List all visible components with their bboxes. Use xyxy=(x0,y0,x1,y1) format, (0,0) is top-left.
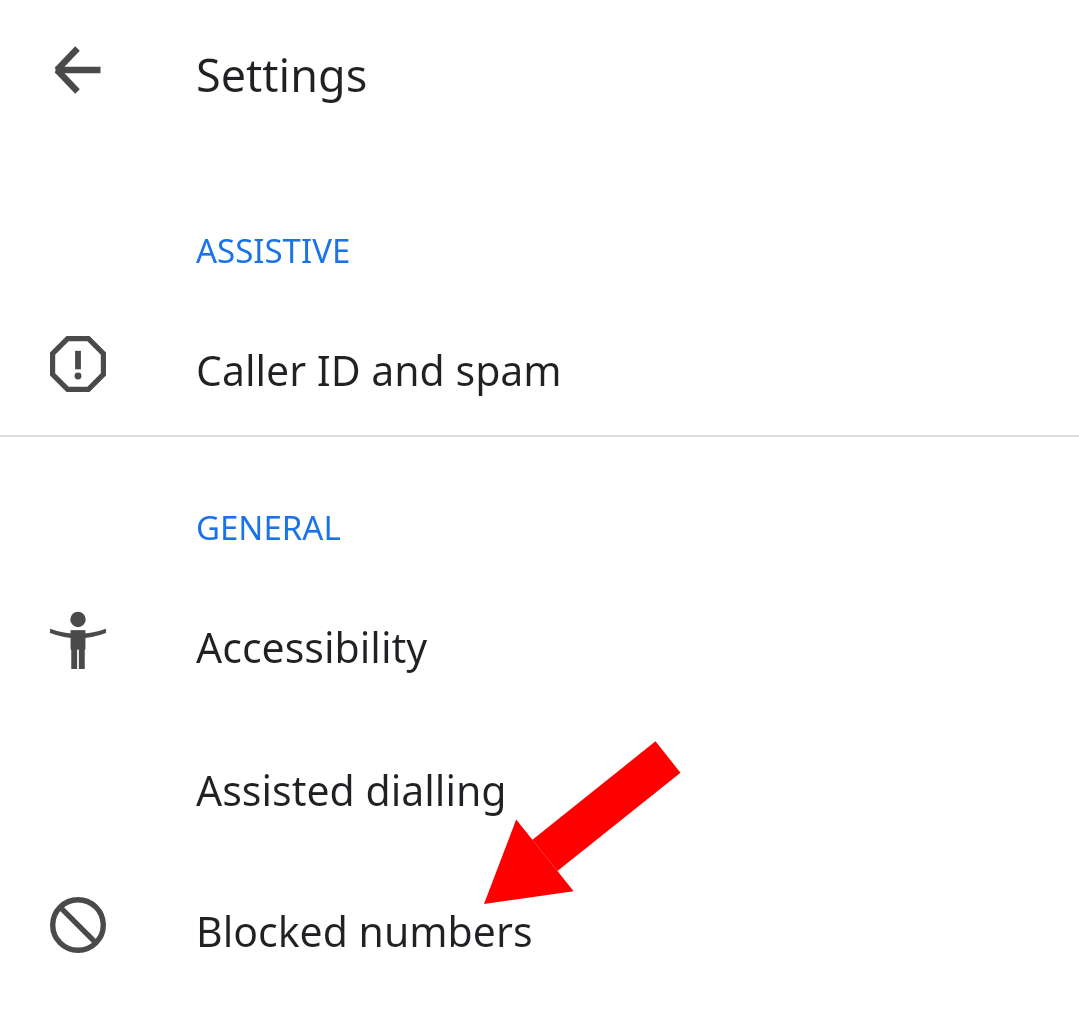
staticText: Assisted dialling xyxy=(196,762,507,818)
staticText: ASSISTIVE xyxy=(196,228,351,273)
staticText: Blocked numbers xyxy=(196,903,533,959)
staticText: Accessibility xyxy=(196,619,428,675)
button[interactable]: Caller ID and spam xyxy=(0,306,1079,422)
staticText: GENERAL xyxy=(196,505,341,550)
staticText: Settings xyxy=(196,44,368,105)
button[interactable]: Back xyxy=(30,22,126,118)
button[interactable]: Assisted dialling xyxy=(0,726,1079,842)
staticText: Caller ID and spam xyxy=(196,342,562,398)
button[interactable]: Accessibility xyxy=(0,583,1079,699)
button[interactable]: Blocked numbers xyxy=(0,867,1079,983)
